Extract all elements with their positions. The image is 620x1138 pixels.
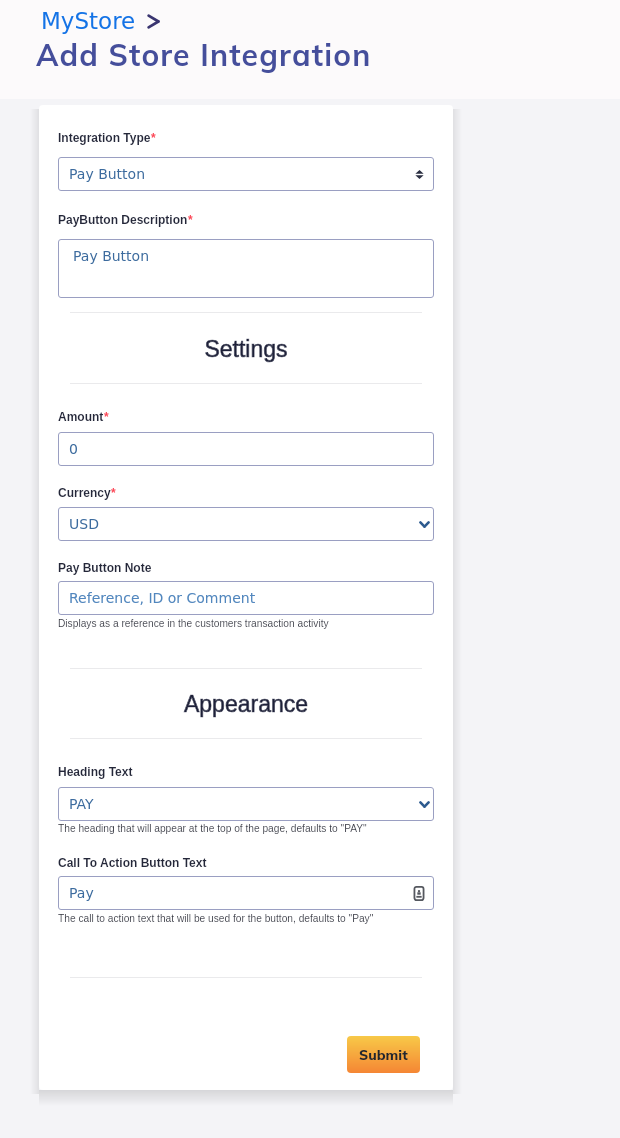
button[interactable]: Pay: [58, 876, 434, 910]
staticText: Pay Button Note: [58, 561, 152, 574]
staticText: Submit: [359, 1046, 408, 1064]
button[interactable]: USD: [58, 507, 434, 541]
staticText: *: [104, 410, 109, 423]
staticText: Settings: [39, 336, 453, 362]
staticText: Pay Button: [69, 166, 146, 182]
button[interactable]: Pay Button: [58, 157, 434, 191]
staticText: The heading that will appear at the top …: [58, 823, 367, 834]
staticText: PAY: [69, 796, 94, 812]
staticText: *: [188, 213, 193, 226]
staticText: Add Store Integration: [36, 36, 372, 74]
button[interactable]: 0: [58, 432, 434, 466]
button[interactable]: Submit: [347, 1036, 420, 1073]
staticText: *: [151, 131, 156, 144]
staticText: Heading Text: [58, 765, 133, 778]
staticText: Displays as a reference in the customers…: [58, 618, 329, 629]
staticText: Currency: [58, 486, 111, 499]
other: Open dropdown: [419, 801, 430, 808]
staticText: The call to action text that will be use…: [58, 913, 374, 924]
staticText: 0: [69, 441, 78, 457]
staticText: Pay: [69, 885, 94, 901]
other: Autofill: [413, 886, 425, 901]
staticText: Appearance: [39, 691, 453, 717]
staticText: *: [111, 486, 116, 499]
staticText: PayButton Description: [58, 213, 188, 226]
other: Open dropdown: [419, 521, 430, 528]
button[interactable]: Pay Button: [58, 239, 434, 298]
staticText: Call To Action Button Text: [58, 856, 207, 869]
button[interactable]: MyStore: [41, 8, 136, 35]
button[interactable]: Reference, ID or Comment: [58, 581, 434, 615]
staticText: Settings: [39, 336, 453, 362]
other: Open select: [415, 168, 424, 181]
staticText: USD: [69, 516, 99, 532]
staticText: Appearance: [39, 691, 453, 717]
button[interactable]: PAY: [58, 787, 434, 821]
staticText: Reference, ID or Comment: [69, 590, 256, 606]
staticText: Pay Button: [73, 248, 150, 264]
staticText: Amount: [58, 410, 104, 423]
staticText: Integration Type: [58, 131, 151, 144]
